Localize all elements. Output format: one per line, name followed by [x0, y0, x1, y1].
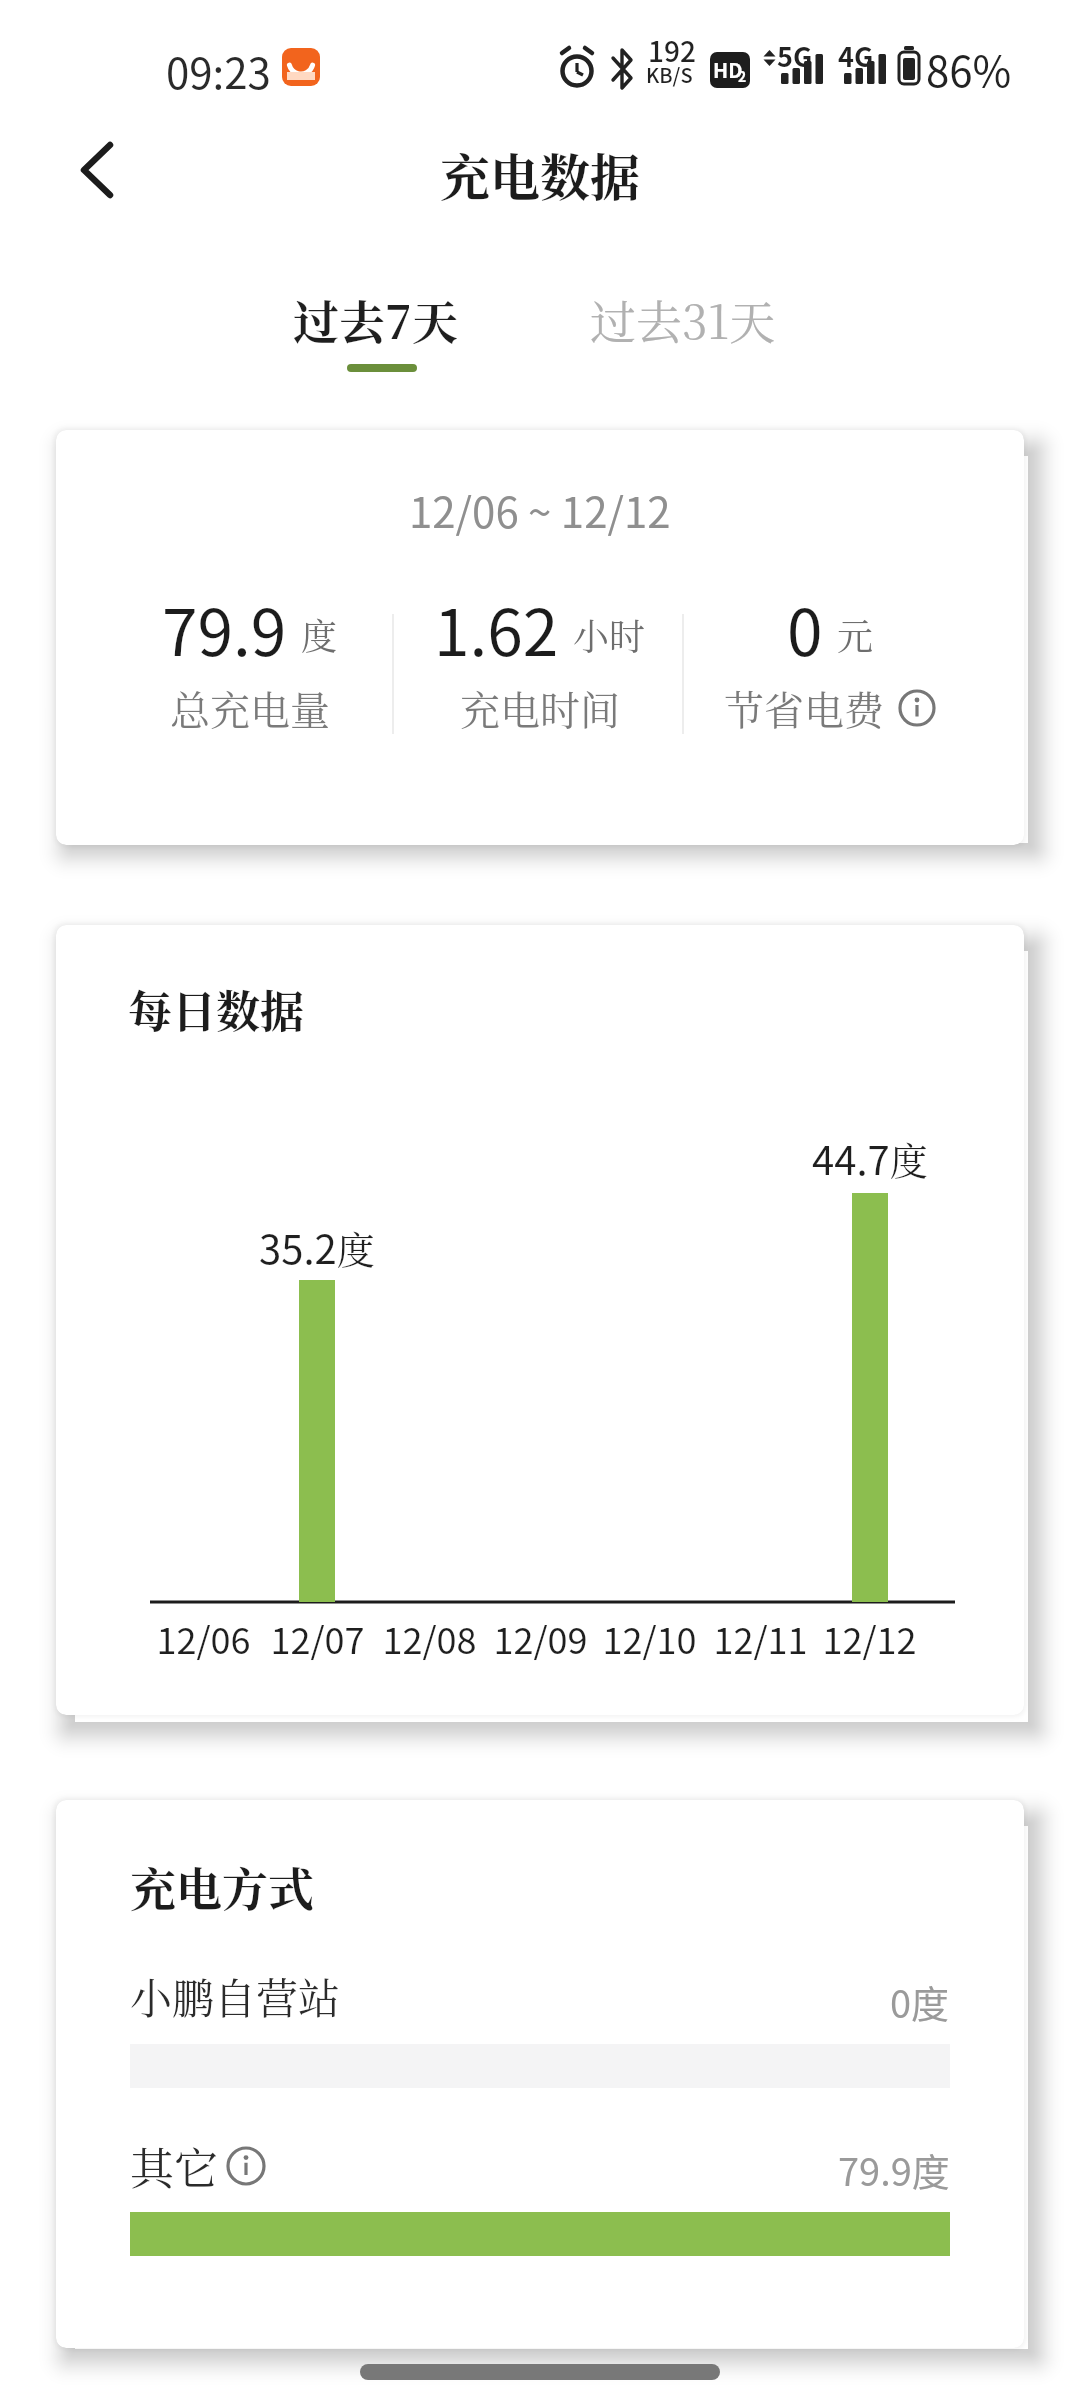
staticText: 12/10: [602, 1612, 697, 1664]
staticText: 44.7度: [812, 1129, 928, 1187]
staticText: 充电时间: [460, 679, 620, 736]
button[interactable]: 过去7天: [226, 270, 526, 380]
staticText: 小时: [573, 609, 646, 661]
staticText: 1.62: [434, 582, 559, 675]
staticText: 0: [787, 582, 823, 675]
staticText: 12/08: [382, 1612, 477, 1664]
staticText: 小鹏自营站: [130, 1966, 341, 2026]
staticText: 12/06 ~ 12/12: [409, 479, 671, 540]
staticText: 总充电量: [170, 679, 330, 736]
staticText: 86%: [926, 38, 1012, 99]
staticText: 每日数据: [128, 977, 304, 1040]
staticText: 充电数据: [440, 138, 640, 210]
staticText: 192: [648, 30, 696, 71]
staticText: 12/06: [156, 1612, 251, 1664]
button[interactable]: [226, 2146, 266, 2186]
staticText: 2: [738, 66, 747, 86]
staticText: HD: [713, 55, 743, 84]
staticText: 节省电费: [724, 679, 884, 736]
staticText: 09:23: [166, 40, 271, 101]
button[interactable]: [56, 130, 136, 210]
staticText: 0度: [890, 1974, 950, 2029]
staticText: 12/09: [493, 1612, 588, 1664]
staticText: 35.2度: [259, 1218, 375, 1276]
staticText: 过去31天: [590, 286, 776, 352]
staticText: KB/S: [646, 60, 693, 89]
staticText: 过去7天: [293, 286, 459, 352]
staticText: 度: [301, 609, 338, 661]
staticText: 充电方式: [130, 1853, 314, 1919]
staticText: 79.9: [162, 582, 287, 675]
staticText: 其它: [130, 2134, 218, 2197]
staticText: 12/12: [822, 1612, 917, 1664]
staticText: 12/11: [713, 1612, 808, 1664]
staticText: 4G: [838, 36, 874, 75]
staticText: 5G: [777, 36, 813, 75]
staticText: 元: [837, 609, 874, 661]
staticText: 79.9度: [838, 2142, 950, 2197]
button[interactable]: 其它: [130, 2134, 266, 2197]
staticText: 12/07: [270, 1612, 365, 1664]
button[interactable]: 过去31天: [533, 270, 833, 380]
